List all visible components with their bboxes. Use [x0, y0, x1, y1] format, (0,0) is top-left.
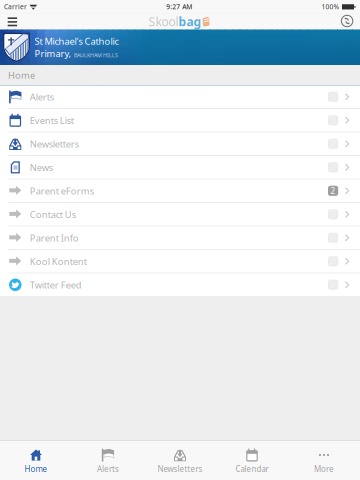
staticText: BAULKHAM HILLS — [74, 52, 118, 59]
staticText: More — [314, 463, 334, 474]
staticText: 0 — [331, 232, 336, 243]
staticText: Twitter Feed — [30, 279, 82, 291]
button[interactable]: Menu — [0, 14, 23, 28]
button[interactable]: Kool Kontent — [0, 250, 360, 273]
staticText: 0 — [331, 115, 336, 126]
staticText: Events List — [30, 114, 74, 126]
staticText: Alerts — [30, 91, 54, 103]
staticText: Home — [8, 69, 35, 81]
staticText: 2 — [331, 185, 336, 196]
staticText: Parent eForms — [30, 185, 94, 197]
staticText: Home — [24, 463, 47, 474]
staticText: St Michael's Catholic — [34, 35, 118, 47]
staticText: Alerts — [97, 463, 119, 474]
button[interactable]: Alerts — [72, 440, 144, 480]
button[interactable]: Calendar — [216, 440, 288, 480]
staticText: Calendar — [235, 463, 268, 474]
staticText: Skool — [148, 13, 178, 29]
button[interactable]: Contact Us — [0, 203, 360, 226]
staticText: Newsletters — [30, 138, 79, 150]
staticText: Contact Us — [30, 208, 76, 220]
staticText: 100% — [321, 2, 339, 11]
staticText: Parent Info — [30, 232, 79, 244]
button[interactable]: Events List — [0, 109, 360, 132]
staticText: Newsletters — [157, 463, 202, 474]
staticText: 9:27 AM — [166, 2, 192, 11]
button[interactable]: Newsletters — [144, 440, 216, 480]
button[interactable]: Refresh — [335, 13, 360, 29]
button[interactable]: Parent eForms — [0, 179, 360, 203]
staticText: 0 — [331, 256, 336, 267]
button[interactable]: News — [0, 156, 360, 179]
button[interactable]: Parent Info — [0, 226, 360, 250]
button[interactable]: Alerts — [0, 85, 360, 109]
staticText: Kool Kontent — [30, 255, 87, 267]
staticText: 0 — [331, 162, 336, 173]
staticText: Primary, — [34, 47, 71, 60]
staticText: News — [30, 161, 53, 173]
button[interactable]: Home — [0, 440, 72, 480]
staticText: bag — [178, 13, 201, 29]
staticText: Carrier — [4, 2, 27, 11]
staticText: 0 — [331, 138, 336, 149]
button[interactable]: More — [288, 440, 360, 480]
staticText: 0 — [331, 209, 336, 220]
button[interactable]: Newsletters — [0, 132, 360, 156]
button[interactable]: Twitter Feed — [0, 273, 360, 296]
